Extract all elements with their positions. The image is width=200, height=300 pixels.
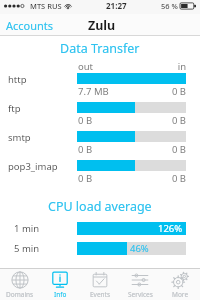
staticText: Events bbox=[90, 290, 111, 299]
staticText: Accounts bbox=[6, 18, 54, 33]
staticText: CPU load average bbox=[48, 198, 152, 215]
button[interactable]: smtp bbox=[0, 130, 200, 159]
button[interactable]: Accounts bbox=[0, 16, 60, 35]
button[interactable]: http bbox=[0, 72, 200, 101]
staticText: 126% bbox=[158, 222, 183, 235]
staticText: 46% bbox=[130, 242, 149, 255]
staticText: http bbox=[8, 73, 27, 86]
staticText: 56 % bbox=[161, 1, 178, 11]
staticText: Info bbox=[54, 290, 67, 299]
staticText: Services bbox=[128, 290, 153, 299]
staticText: 0 B bbox=[78, 172, 93, 185]
button[interactable]: pop3_imap bbox=[0, 159, 200, 188]
staticText: 7.7 MB bbox=[78, 85, 109, 98]
staticText: Data Transfer bbox=[60, 40, 140, 57]
staticText: pop3_imap bbox=[8, 160, 58, 173]
staticText: 0 B bbox=[156, 143, 186, 156]
staticText: 0 B bbox=[78, 114, 93, 127]
button[interactable]: Services bbox=[120, 269, 160, 300]
staticText: out bbox=[78, 60, 94, 72]
staticText: in bbox=[170, 60, 186, 72]
staticText: More bbox=[172, 290, 189, 299]
button[interactable]: 5 min bbox=[0, 241, 200, 255]
staticText: 21:27 bbox=[106, 0, 127, 11]
staticText: 0 B bbox=[156, 114, 186, 127]
button[interactable]: More bbox=[160, 269, 200, 300]
button[interactable]: Info bbox=[40, 269, 80, 300]
staticText: 1 min bbox=[14, 222, 40, 235]
button[interactable]: ftp bbox=[0, 101, 200, 130]
staticText: Domains bbox=[6, 290, 34, 299]
button[interactable]: 1 min bbox=[0, 221, 200, 235]
staticText: 0 B bbox=[78, 143, 93, 156]
staticText: ftp bbox=[8, 102, 21, 115]
button[interactable]: Domains bbox=[0, 269, 40, 300]
staticText: MTS RUS bbox=[30, 1, 62, 11]
staticText: 0 B bbox=[156, 172, 186, 185]
staticText: 5 min bbox=[14, 242, 40, 255]
staticText: smtp bbox=[8, 131, 31, 144]
button[interactable]: Events bbox=[80, 269, 120, 300]
staticText: 0 B bbox=[156, 85, 186, 98]
staticText: Zulu bbox=[88, 17, 116, 34]
